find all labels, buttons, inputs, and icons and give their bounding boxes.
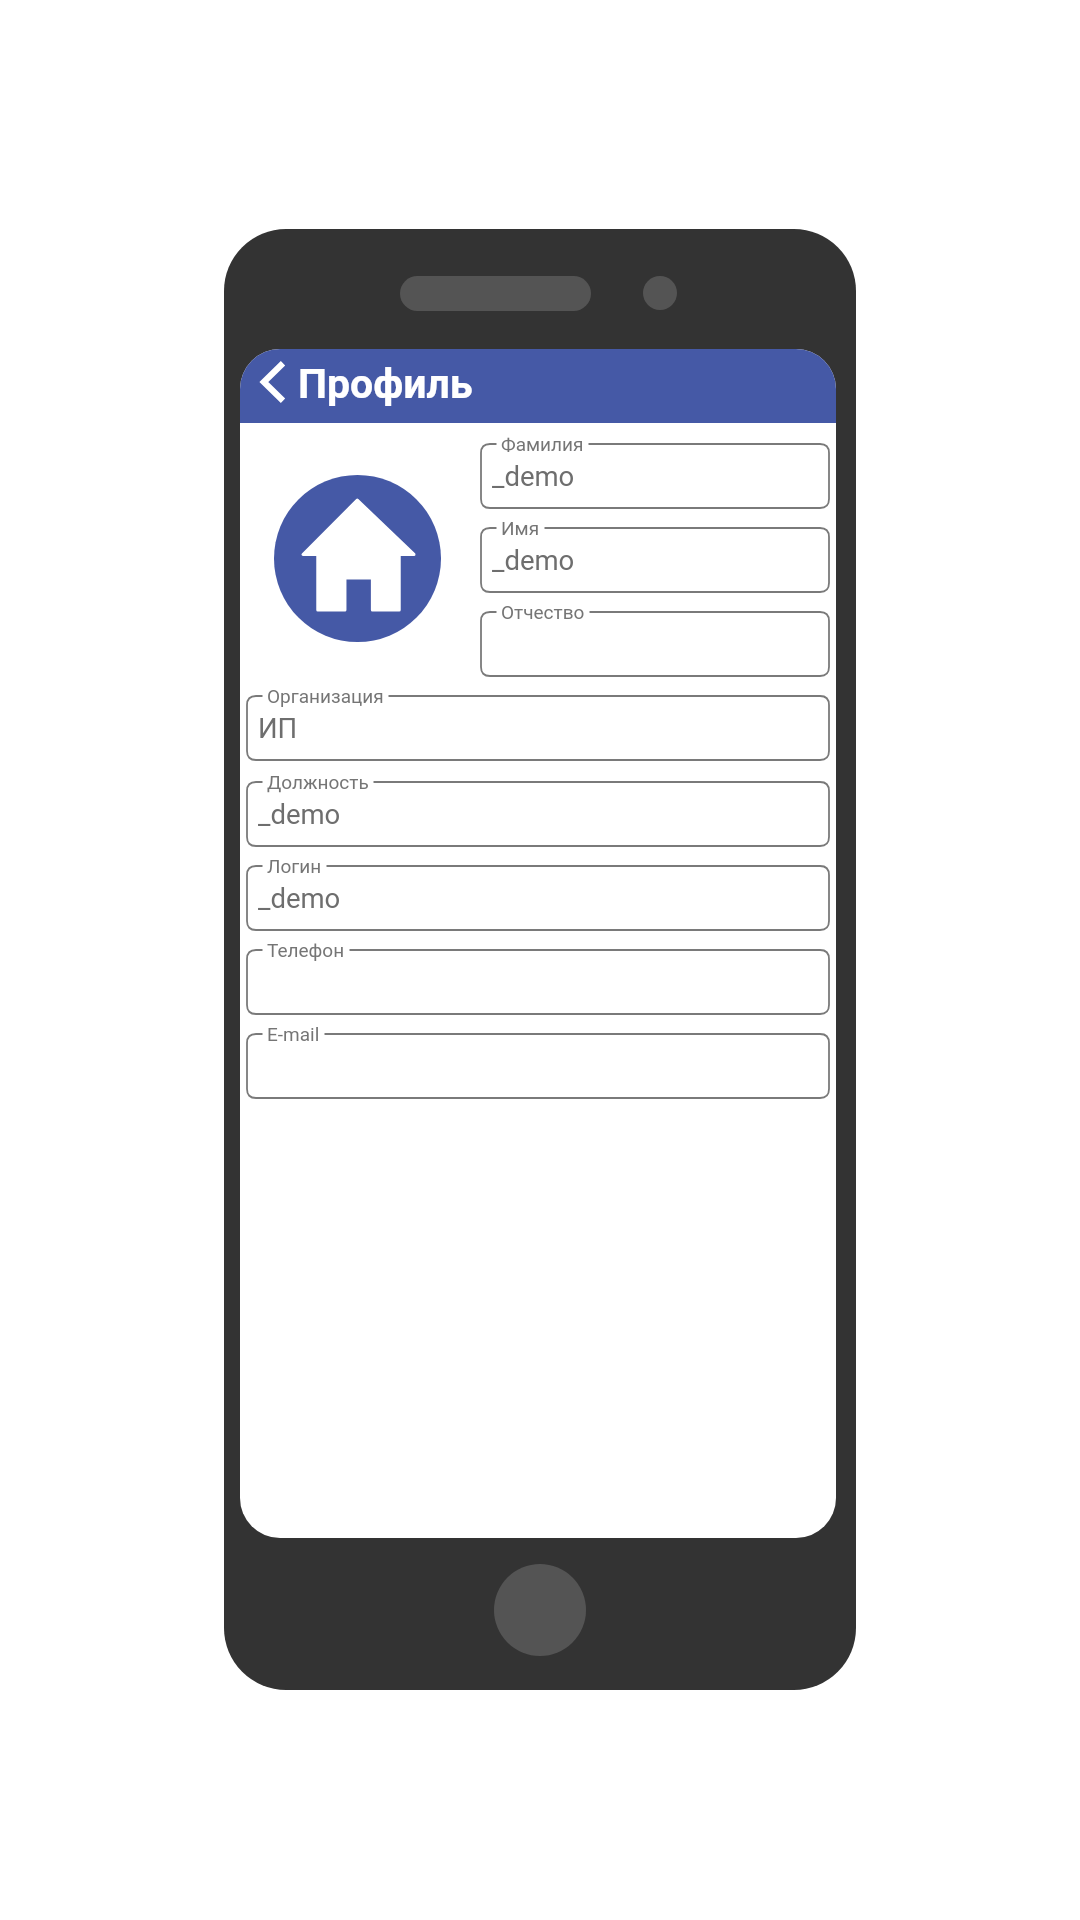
staticText: Отчество <box>501 601 585 623</box>
staticText: _demo <box>492 460 575 492</box>
staticText: Фамилия <box>501 433 584 455</box>
button[interactable]: Логин <box>247 866 829 930</box>
staticText: ИП <box>258 712 298 744</box>
button[interactable]: Back <box>240 349 294 423</box>
staticText: Логин <box>267 855 322 877</box>
staticText: Должность <box>267 771 369 793</box>
button[interactable]: Отчество <box>481 612 829 676</box>
button[interactable]: Profile photo <box>274 475 441 642</box>
staticText: Имя <box>501 517 540 539</box>
button[interactable]: Телефон <box>247 950 829 1014</box>
staticText: E-mail <box>267 1023 320 1045</box>
staticText: _demo <box>258 882 341 914</box>
button[interactable]: Должность <box>247 782 829 846</box>
staticText: _demo <box>492 544 575 576</box>
staticText: Телефон <box>267 939 345 961</box>
staticText: Профиль <box>298 360 473 408</box>
button[interactable]: Имя <box>481 528 829 592</box>
button[interactable]: Организация <box>247 696 829 760</box>
button[interactable]: Home <box>494 1564 586 1656</box>
staticText: Организация <box>267 685 384 707</box>
button[interactable]: E-mail <box>247 1034 829 1098</box>
button[interactable]: Фамилия <box>481 444 829 508</box>
staticText: _demo <box>258 798 341 830</box>
